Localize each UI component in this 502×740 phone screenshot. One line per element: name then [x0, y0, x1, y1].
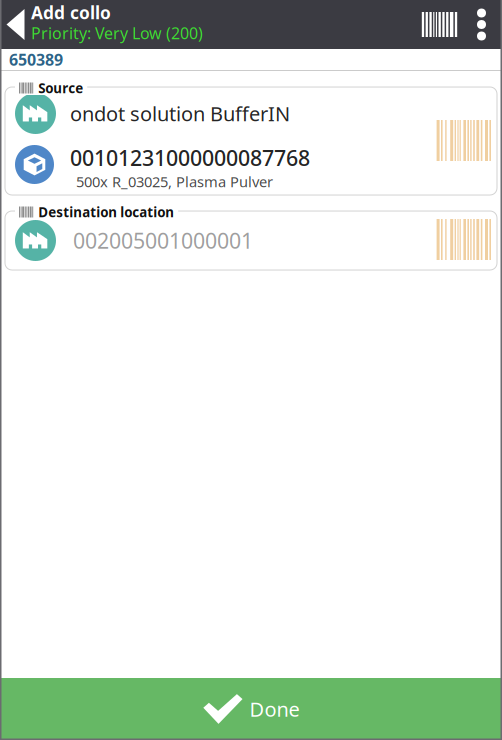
staticText: 002005001000001: [73, 226, 253, 255]
staticText: 500x R_03025, Plasma Pulver: [76, 172, 273, 191]
staticText: Source: [38, 79, 83, 97]
button[interactable]: More options: [461, 0, 502, 49]
button[interactable]: Done: [0, 678, 502, 740]
button[interactable]: Back: [0, 0, 31, 49]
staticText: 650389: [9, 49, 63, 70]
button[interactable]: 650389: [0, 49, 69, 70]
staticText: Add collo: [31, 1, 111, 24]
staticText: ondot solution BufferIN: [70, 100, 290, 127]
staticText: Done: [249, 696, 299, 722]
staticText: 00101231000000087768: [70, 144, 310, 172]
staticText: Priority: Very Low (200): [31, 22, 203, 44]
button[interactable]: Scan barcode: [418, 0, 461, 49]
staticText: Destination location: [38, 203, 174, 221]
